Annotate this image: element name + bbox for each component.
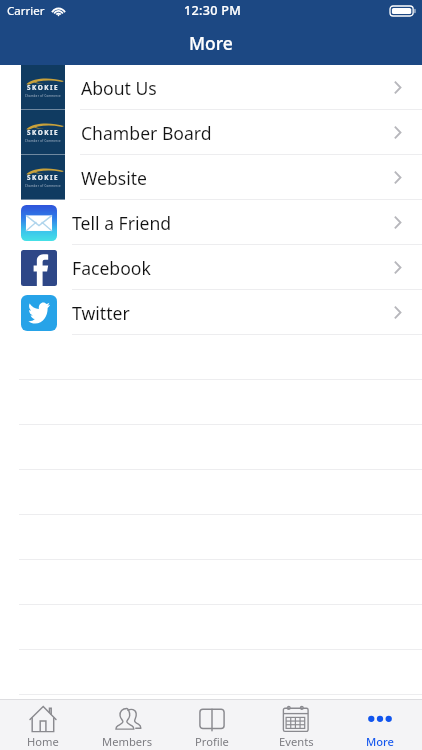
staticText: SKOKIE — [27, 128, 59, 137]
staticText: Profile — [195, 734, 229, 749]
staticText: Home — [27, 734, 59, 749]
button[interactable]: SKOKIE — [0, 155, 422, 200]
button[interactable]: Members — [85, 700, 170, 750]
staticText: Carrier — [7, 3, 45, 19]
staticText: SKOKIE — [27, 173, 59, 182]
button[interactable]: Twitter — [0, 290, 422, 335]
staticText: Chamber of Commerce — [25, 184, 61, 188]
staticText: SKOKIE — [27, 83, 59, 92]
button[interactable]: Events — [254, 700, 338, 750]
staticText: Members — [102, 734, 153, 749]
button[interactable]: More — [338, 700, 422, 750]
staticText: Events — [279, 734, 314, 749]
staticText: Twitter — [72, 301, 130, 325]
staticText: Chamber of Commerce — [25, 94, 61, 98]
button[interactable]: SKOKIE — [0, 110, 422, 155]
button[interactable]: Facebook — [0, 245, 422, 290]
button[interactable]: SKOKIE — [0, 65, 422, 110]
button[interactable]: Tell a Friend — [0, 200, 422, 245]
staticText: More — [366, 734, 395, 749]
staticText: Chamber of Commerce — [25, 139, 61, 143]
staticText: More — [189, 31, 233, 55]
staticText: Tell a Friend — [72, 211, 172, 235]
staticText: 12:30 PM — [184, 2, 242, 19]
button[interactable]: Profile — [170, 700, 254, 750]
staticText: Facebook — [72, 256, 151, 280]
staticText: Website — [81, 166, 147, 190]
staticText: About Us — [81, 76, 157, 100]
button[interactable]: Home — [0, 700, 85, 750]
staticText: Chamber Board — [81, 121, 212, 145]
